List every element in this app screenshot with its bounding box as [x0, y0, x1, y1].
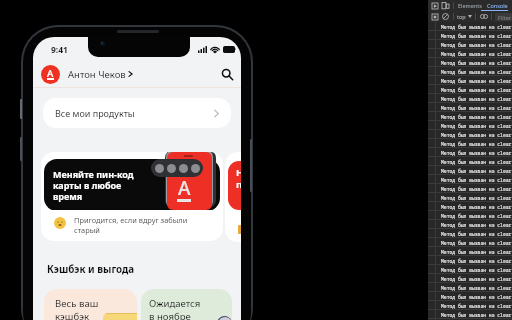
- staticText: Метод был вызван на clear: [441, 114, 512, 120]
- button[interactable]: Console sidebar: [430, 12, 439, 21]
- staticText: Метод был вызван на clear: [441, 204, 512, 210]
- staticText: Метод был вызван на clear: [441, 24, 512, 30]
- staticText: Ожидается в ноябре: [149, 297, 201, 320]
- button[interactable]: Меняйте пин-код карты в любое время: [41, 152, 223, 241]
- staticText: Filter: [498, 14, 512, 21]
- staticText: Метод был вызван на clear: [441, 312, 512, 318]
- staticText: Метод был вызван на clear: [441, 123, 512, 129]
- staticText: Метод был вызван на clear: [441, 303, 512, 309]
- staticText: Метод был вызван на clear: [441, 69, 512, 75]
- button[interactable]: Live expressions: [479, 12, 488, 21]
- staticText: Метод был вызван на clear: [441, 51, 512, 57]
- staticText: Метод был вызван на clear: [441, 195, 512, 201]
- staticText: Метод был вызван на clear: [441, 294, 512, 300]
- button[interactable]: Toggle device toolbar: [441, 1, 450, 10]
- staticText: Метод был вызван на clear: [441, 150, 512, 156]
- button[interactable]: Clear console: [441, 12, 450, 21]
- staticText: Метод был вызван на clear: [441, 213, 512, 219]
- button[interactable]: Н п: [225, 152, 241, 242]
- staticText: Метод был вызван на clear: [441, 267, 512, 273]
- staticText: A: [178, 175, 191, 197]
- staticText: Н п: [236, 166, 241, 190]
- staticText: Метод был вызван на clear: [441, 240, 512, 246]
- staticText: Метод был вызван на clear: [441, 42, 512, 48]
- staticText: Метод был вызван на clear: [441, 231, 512, 237]
- staticText: Кэшбэк и выгода: [47, 263, 135, 276]
- staticText: Метод был вызван на clear: [441, 87, 512, 93]
- staticText: Метод был вызван на clear: [441, 132, 512, 138]
- staticText: A: [47, 67, 54, 78]
- staticText: Весь ваш кэшбэк: [55, 297, 99, 320]
- staticText: Метод был вызван на clear: [441, 285, 512, 291]
- button[interactable]: Антон Чеков: [68, 68, 126, 81]
- button[interactable]: Search: [217, 64, 237, 84]
- staticText: Метод был вызван на clear: [441, 105, 512, 111]
- staticText: Метод был вызван на clear: [441, 60, 512, 66]
- button[interactable]: Все мои продукты: [43, 98, 231, 128]
- staticText: Метод был вызван на clear: [441, 78, 512, 84]
- staticText: Метод был вызван на clear: [441, 276, 512, 282]
- staticText: Метод был вызван на clear: [441, 186, 512, 192]
- button[interactable]: Inspect element: [430, 1, 439, 10]
- button[interactable]: Весь ваш кэшбэк: [44, 289, 137, 320]
- staticText: Метод был вызван на clear: [441, 249, 512, 255]
- staticText: Меняйте пин-код карты в любое время: [53, 168, 134, 202]
- staticText: Метод был вызван на clear: [441, 258, 512, 264]
- button[interactable]: Filter: [495, 13, 512, 21]
- staticText: Пригодится, если вдруг забыли старый: [74, 215, 188, 235]
- staticText: Метод был вызван на clear: [441, 141, 512, 147]
- button[interactable]: Console: [487, 2, 508, 9]
- button[interactable]: Profile: [41, 65, 60, 84]
- staticText: Все мои продукты: [55, 107, 135, 119]
- button[interactable]: Ожидается в ноябре: [141, 289, 232, 320]
- staticText: Метод был вызван на clear: [441, 177, 512, 183]
- staticText: Метод был вызван на clear: [441, 168, 512, 174]
- staticText: Метод был вызван на clear: [441, 159, 512, 165]
- button[interactable]: Elements: [458, 2, 482, 9]
- button[interactable]: top: [457, 13, 466, 20]
- staticText: Метод был вызван на clear: [441, 222, 512, 228]
- staticText: 9:41: [51, 44, 68, 56]
- staticText: Метод был вызван на clear: [441, 33, 512, 39]
- staticText: Метод был вызван на clear: [441, 96, 512, 102]
